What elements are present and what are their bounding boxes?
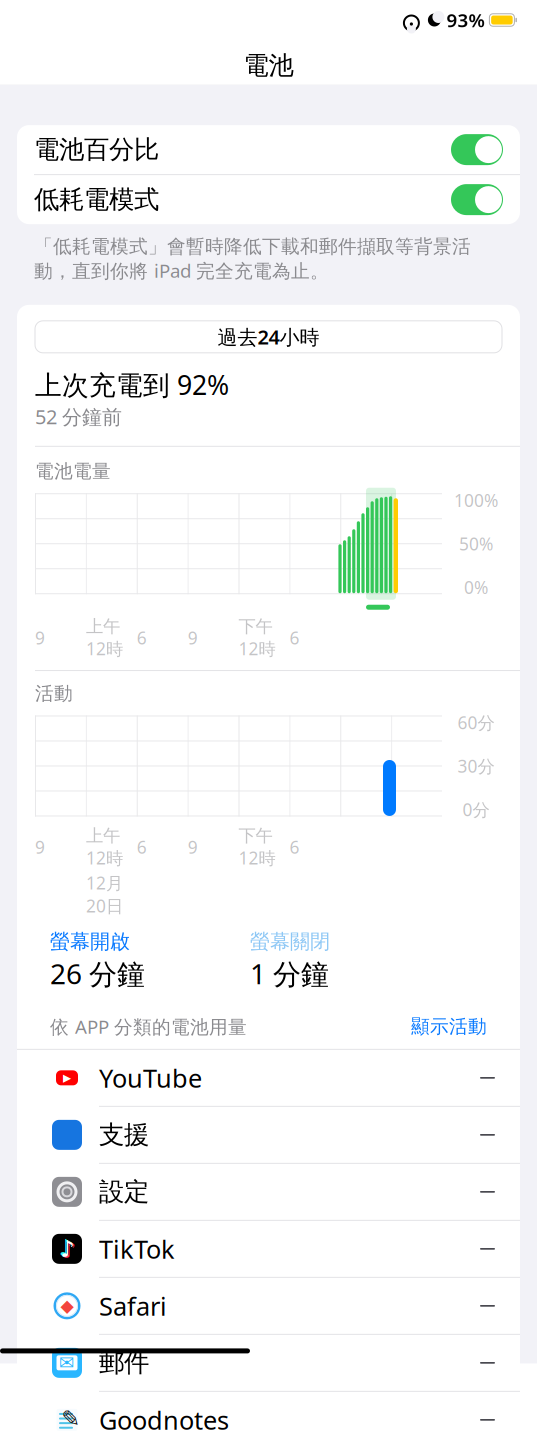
staticText: 52 分鐘前 (35, 403, 122, 430)
button[interactable]: 電池百分比 (17, 125, 520, 174)
staticText: 過去24小時 (217, 324, 319, 350)
staticText: 9 (35, 836, 45, 859)
staticText: ♪ (58, 1235, 72, 1260)
staticText: 0% (464, 576, 488, 599)
staticText: ♪ (60, 1236, 74, 1262)
staticText: 低耗電模式 (34, 184, 159, 215)
staticText: 「低耗電模式」會暫時降低下載和郵件擷取等背景活動，直到你將 iPad 完全充電為… (34, 235, 471, 283)
staticText: 上午12時 (86, 825, 123, 869)
staticText: 上午12時 (86, 616, 123, 660)
button[interactable]: ▶ (17, 1050, 520, 1107)
staticText: 設定 (99, 1176, 149, 1207)
staticText: ✎ (61, 1406, 80, 1432)
staticText: 螢幕開啟 (50, 929, 130, 954)
staticText: 9 (35, 626, 45, 649)
staticText: 電池電量 (35, 460, 111, 483)
staticText: 郵件 (99, 1347, 149, 1378)
button[interactable]: 設定 (17, 1164, 520, 1221)
button[interactable]: ◆ (17, 1278, 520, 1335)
staticText: 26 分鐘 (50, 955, 145, 992)
staticText: 顯示活動 (411, 1015, 487, 1038)
button[interactable]: 低耗電模式 (17, 175, 520, 224)
staticText: ♪ (60, 1236, 74, 1262)
staticText: 100% (454, 489, 498, 512)
staticText: Goodnotes (99, 1403, 229, 1437)
staticText: 9 (188, 836, 198, 859)
staticText: YouTube (99, 1061, 202, 1095)
staticText: 活動 (35, 682, 73, 705)
button[interactable]: 顯示活動 (411, 1015, 487, 1038)
staticText: 1 分鐘 (250, 955, 329, 992)
staticText: 上次充電到 92% (35, 367, 229, 402)
staticText: 9 (188, 626, 198, 649)
staticText: 依 APP 分類的電池用量 (50, 1014, 247, 1039)
staticText: 50% (459, 532, 493, 555)
staticText: 電池百分比 (34, 134, 159, 165)
staticText: 6 (137, 836, 147, 859)
staticText: 6 (289, 626, 299, 649)
staticText: TikTok (99, 1232, 175, 1266)
button[interactable]: ♪ (17, 1221, 520, 1278)
button[interactable]: ✉ (17, 1335, 520, 1392)
staticText: 6 (289, 836, 299, 859)
staticText: 支援 (99, 1119, 149, 1150)
button[interactable] (17, 1107, 520, 1164)
staticText: ▶ (63, 1072, 71, 1084)
staticText: 下午12時 (238, 616, 275, 660)
staticText: 30分 (457, 754, 494, 777)
staticText: 12月20日 (86, 871, 123, 917)
button[interactable]: ✎ (17, 1392, 520, 1448)
staticText: 6 (137, 626, 147, 649)
staticText: 螢幕關閉 (250, 929, 330, 954)
staticText: 下午12時 (238, 825, 275, 869)
staticText: Safari (99, 1289, 167, 1323)
staticText: ◆ (60, 1296, 73, 1316)
staticText: 0分 (462, 798, 489, 821)
staticText: ♪ (62, 1237, 76, 1263)
staticText: 60分 (457, 711, 494, 734)
button[interactable]: 過去24小時 (35, 321, 502, 353)
staticText: ✉ (59, 1352, 75, 1373)
